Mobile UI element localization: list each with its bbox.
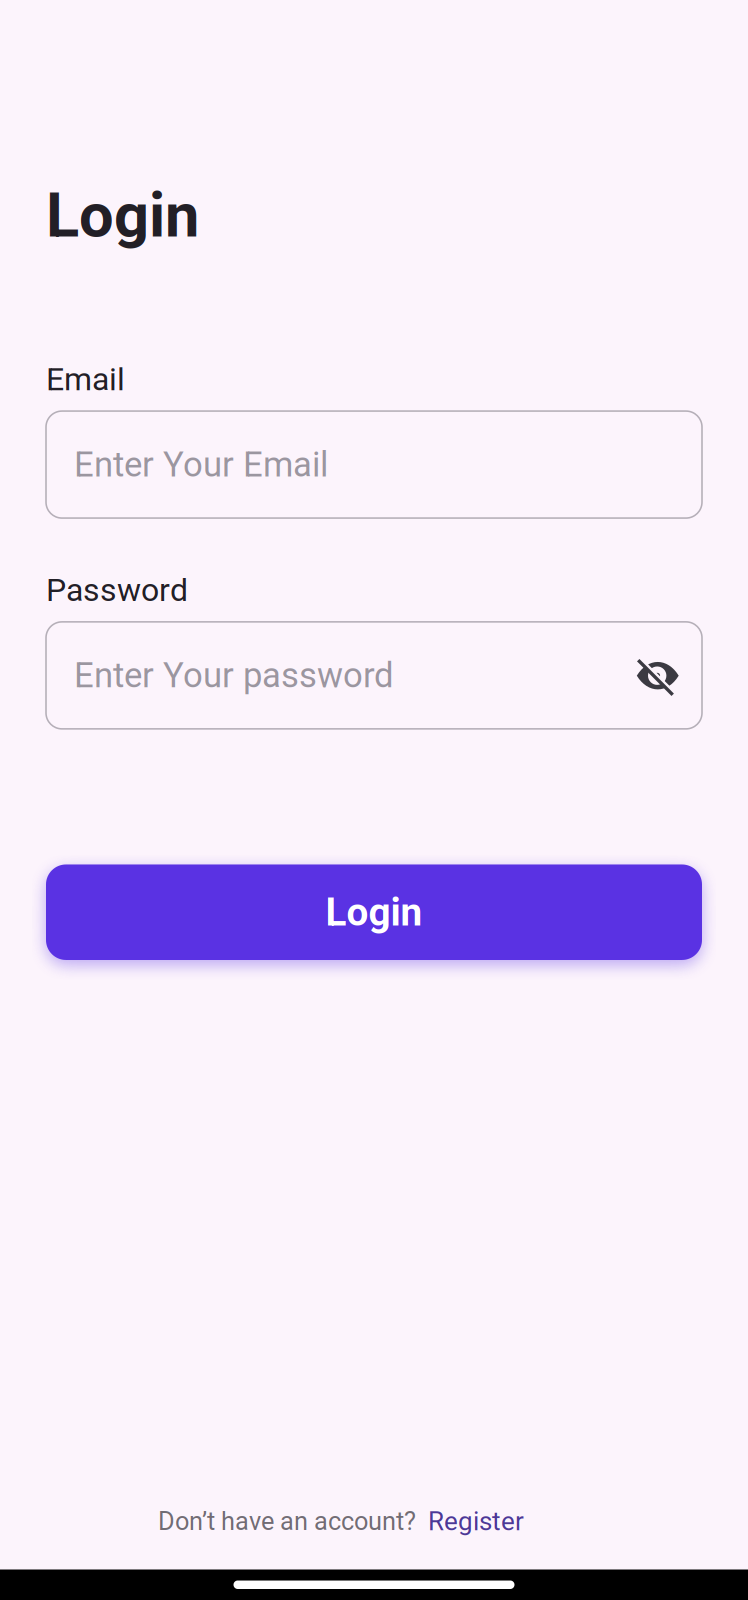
staticText: Enter Your password	[74, 655, 394, 696]
staticText: Don’t have an account?	[158, 1506, 416, 1536]
staticText: Enter Your Email	[74, 444, 328, 485]
button[interactable]: Register	[428, 1506, 524, 1536]
staticText: Password	[46, 571, 188, 609]
staticText: Login	[325, 890, 422, 935]
staticText: Email	[46, 361, 125, 398]
staticText: Register	[428, 1506, 524, 1536]
staticText: Login	[46, 180, 199, 251]
button[interactable]: Show password	[635, 653, 681, 697]
button[interactable]: Login	[46, 864, 702, 960]
